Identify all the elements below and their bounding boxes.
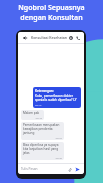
button[interactable]: Attach file: [66, 166, 73, 173]
button[interactable]: Call: [75, 34, 81, 41]
staticText: Ngobrol Sepuasnya: [18, 3, 85, 13]
staticText: 20:27: [55, 136, 62, 139]
staticText: Kaku, pemeriksaan dokter spesialis sudah…: [35, 94, 79, 102]
staticText: Bisa diperiksa ya supaya kita lanjutkan …: [23, 143, 62, 155]
staticText: Malam pak: [23, 111, 40, 115]
button[interactable]: Back: [21, 34, 28, 41]
staticText: Pemeriksaan merupakan kewajiban penderit…: [23, 123, 62, 135]
button[interactable]: Malam pak: [21, 110, 44, 120]
button[interactable]: Pemeriksaan merupakan kewajiban penderit…: [21, 122, 64, 140]
staticText: 20:35: [55, 156, 62, 159]
button[interactable]: Tulis Pesan: [21, 167, 66, 171]
button[interactable]: Bisa diperiksa ya supaya kita lanjutkan …: [21, 142, 64, 160]
button[interactable]: Keterangan:: [33, 87, 81, 108]
staticText: 20:18: [35, 116, 42, 119]
staticText: Konsultasi Kesehatan: [31, 35, 67, 40]
button[interactable]: Send: [74, 166, 81, 173]
staticText: Tulis Pesan: [21, 167, 38, 171]
staticText: dengan Konsultan: [20, 13, 83, 23]
staticText: 20:15: [35, 103, 42, 106]
button[interactable]: History: [67, 34, 74, 41]
staticText: Keterangan:: [35, 89, 54, 93]
